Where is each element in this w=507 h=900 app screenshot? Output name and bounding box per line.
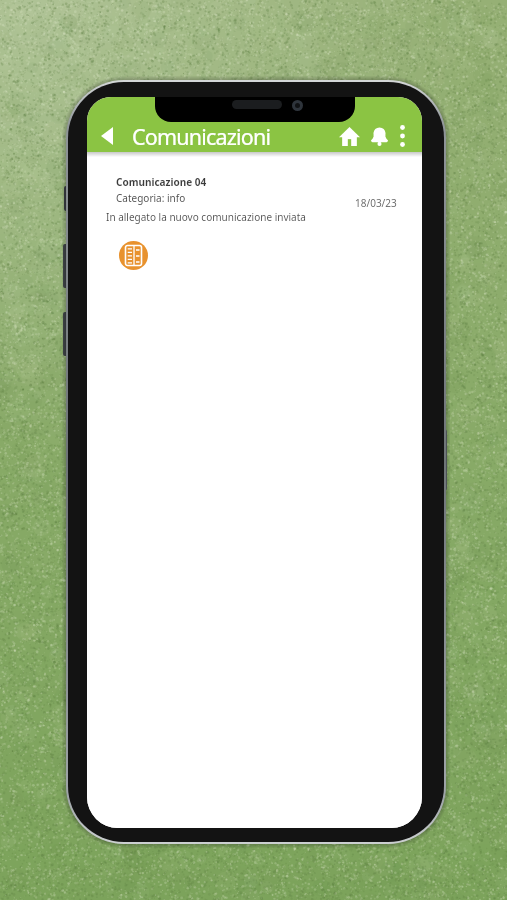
button[interactable] [369, 124, 389, 148]
staticText: Categoria: info [116, 191, 186, 205]
button[interactable] [119, 241, 148, 270]
staticText: In allegato la nuovo comunicazione invia… [106, 210, 306, 224]
button[interactable] [100, 126, 114, 146]
button[interactable] [397, 125, 407, 147]
staticText: Comunicazione 04 [116, 175, 207, 189]
staticText: Comunicazioni [132, 122, 271, 151]
staticText: 18/03/23 [355, 196, 397, 210]
button[interactable] [337, 124, 361, 148]
